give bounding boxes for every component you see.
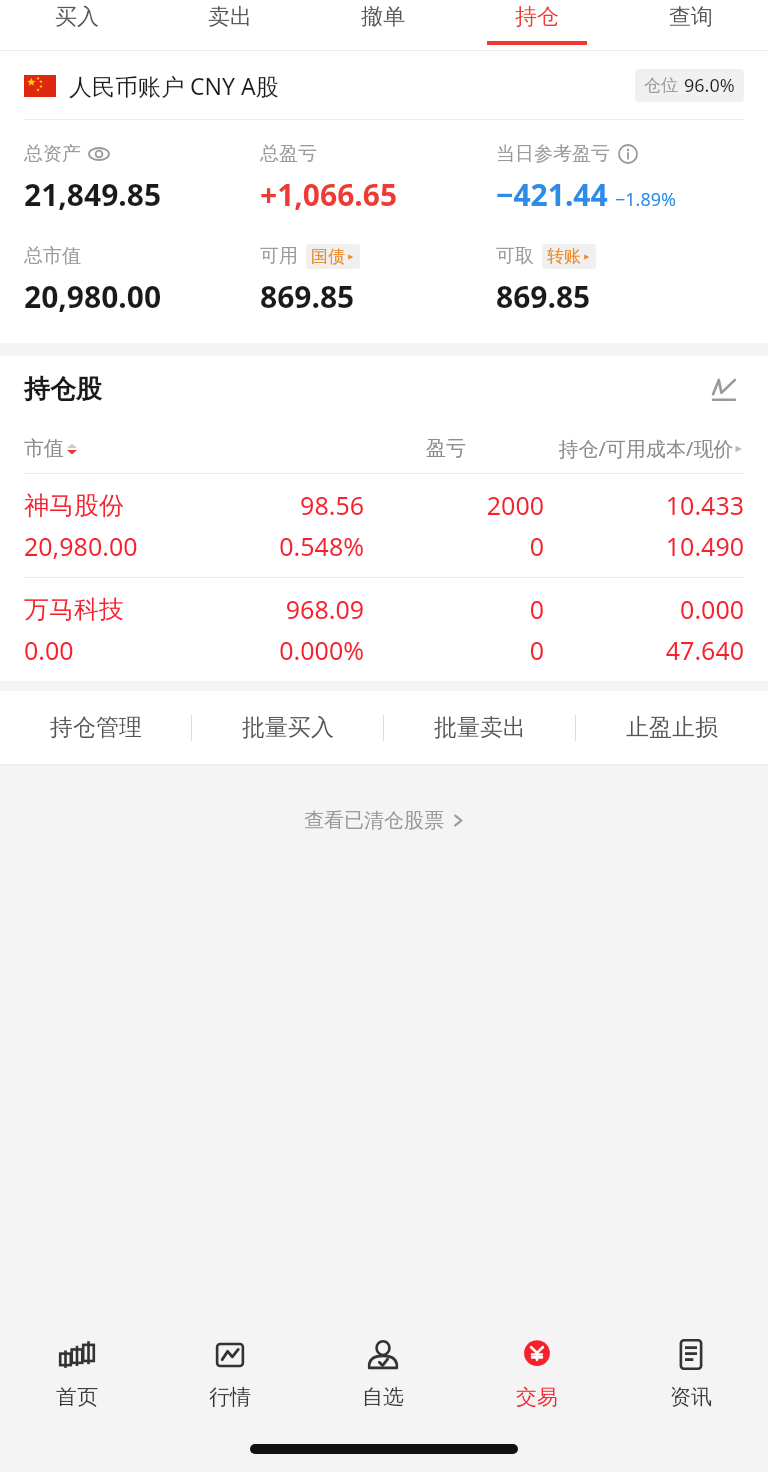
staticText: 869.85 xyxy=(496,276,591,317)
button[interactable]: 批量买入 xyxy=(192,691,384,764)
staticText: 968.09 xyxy=(234,592,364,626)
staticText: 市值 xyxy=(24,436,64,461)
button[interactable]: 持仓 xyxy=(460,0,614,51)
staticText: 可取 xyxy=(496,244,534,268)
staticText: 0.000 xyxy=(544,592,744,626)
staticText: 869.85 xyxy=(260,276,355,317)
staticText: 交易 xyxy=(516,1384,558,1410)
button[interactable]: 国债 xyxy=(311,246,355,267)
staticText: 卖出 xyxy=(208,3,252,31)
staticText: 47.640 xyxy=(544,633,744,667)
button[interactable]: 万马科技 xyxy=(0,578,768,681)
button[interactable]: 转账 xyxy=(547,246,591,267)
staticText: 总盈亏 xyxy=(260,142,317,166)
staticText: 0 xyxy=(364,633,544,667)
button[interactable]: 卖出 xyxy=(153,0,306,51)
staticText: 查看已清仓股票 xyxy=(304,808,444,833)
staticText: 0.548% xyxy=(234,529,364,563)
staticText: 持仓/可用 xyxy=(466,435,646,462)
button[interactable]: Info xyxy=(618,144,638,164)
staticText: 自选 xyxy=(362,1384,404,1410)
staticText: 持仓 xyxy=(515,3,559,31)
staticText: 成本/现价 xyxy=(646,435,734,462)
button[interactable]: 撤单 xyxy=(306,0,460,51)
staticText: 96.0% xyxy=(684,73,735,98)
staticText: 总市值 xyxy=(24,244,81,268)
staticText: 人民币账户 CNY A股 xyxy=(69,70,279,101)
staticText: −1.89% xyxy=(615,187,676,212)
staticText: 撤单 xyxy=(361,3,405,31)
staticText: 资讯 xyxy=(670,1384,712,1410)
staticText: 止盈止损 xyxy=(626,713,718,742)
button[interactable]: Toggle visibility xyxy=(89,144,109,164)
button[interactable]: 查看已清仓股票 xyxy=(304,808,465,833)
staticText: 0.000% xyxy=(234,633,364,667)
staticText: 批量买入 xyxy=(242,713,334,742)
button[interactable]: 自选 xyxy=(306,1328,460,1414)
button[interactable]: 批量卖出 xyxy=(384,691,576,764)
staticText: 21,849.85 xyxy=(24,174,162,215)
staticText: 万马科技 xyxy=(24,594,234,625)
button[interactable]: 人民币账户 CNY A股 xyxy=(24,51,744,120)
staticText: 0.00 xyxy=(24,633,234,667)
staticText: 20,980.00 xyxy=(24,529,234,563)
staticText: −421.44 xyxy=(496,174,608,215)
staticText: 持仓管理 xyxy=(50,713,142,742)
button[interactable]: 仓位 xyxy=(644,73,735,98)
staticText: 盈亏 xyxy=(336,436,466,461)
button[interactable]: 市值 xyxy=(24,436,336,461)
staticText: 首页 xyxy=(56,1384,98,1410)
staticText: 0 xyxy=(364,529,544,563)
button[interactable]: 资讯 xyxy=(614,1328,768,1414)
staticText: 批量卖出 xyxy=(434,713,526,742)
staticText: 持仓股 xyxy=(24,373,102,406)
staticText: 行情 xyxy=(209,1384,251,1410)
button[interactable]: Chart view xyxy=(704,369,744,409)
button[interactable]: 行情 xyxy=(153,1328,306,1414)
staticText: 神马股份 xyxy=(24,490,234,521)
staticText: 2000 xyxy=(364,488,544,522)
staticText: 总资产 xyxy=(24,142,81,166)
staticText: 98.56 xyxy=(234,488,364,522)
staticText: 可用 xyxy=(260,244,298,268)
button[interactable]: 神马股份 xyxy=(0,474,768,577)
staticText: 查询 xyxy=(669,3,713,31)
button[interactable]: 成本/现价 xyxy=(646,435,744,462)
button[interactable]: 买入 xyxy=(0,0,153,51)
staticText: 0 xyxy=(364,592,544,626)
button[interactable]: 查询 xyxy=(614,0,768,51)
staticText: 转账 xyxy=(547,246,581,267)
staticText: 20,980.00 xyxy=(24,276,162,317)
staticText: 买入 xyxy=(55,3,99,31)
staticText: 仓位 xyxy=(644,75,678,96)
button[interactable]: 持仓管理 xyxy=(0,691,192,764)
staticText: 10.433 xyxy=(544,488,744,522)
staticText: 国债 xyxy=(311,246,345,267)
button[interactable]: 交易 xyxy=(460,1328,614,1414)
button[interactable]: 首页 xyxy=(0,1328,153,1414)
staticText: 10.490 xyxy=(544,529,744,563)
staticText: +1,066.65 xyxy=(260,174,398,215)
button[interactable]: 止盈止损 xyxy=(576,691,768,764)
staticText: 当日参考盈亏 xyxy=(496,142,610,166)
